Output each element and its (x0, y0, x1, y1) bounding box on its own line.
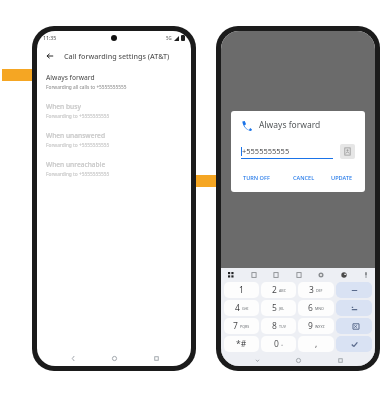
staticText: DEF (316, 288, 323, 293)
staticText: TUV (279, 324, 286, 329)
staticText: JKL (279, 306, 285, 311)
staticText: TURN OFF (243, 174, 270, 182)
button[interactable]: When unreachable (37, 159, 191, 179)
staticText: 6 (308, 302, 313, 314)
staticText: *# (236, 338, 247, 350)
button[interactable]: When busy (221, 101, 375, 121)
staticText: 11:35 (227, 34, 241, 41)
button[interactable]: Recents (334, 355, 346, 366)
staticText: WXYZ (315, 324, 325, 329)
button[interactable]: Dash (336, 282, 372, 298)
staticText: 9 (308, 320, 313, 332)
other: Pointer to Turn off (196, 168, 248, 194)
button[interactable]: Settings (316, 270, 325, 279)
button[interactable]: 8 (261, 318, 296, 334)
button[interactable]: Clipboard (294, 270, 303, 279)
button[interactable]: UPDATE (329, 172, 355, 184)
staticText: Forwarding to +5555555555 (46, 113, 110, 120)
button[interactable]: Theme (339, 270, 348, 279)
button[interactable]: 0 (261, 336, 296, 352)
button[interactable]: , (298, 336, 334, 352)
button[interactable]: 6 (298, 300, 334, 316)
button[interactable]: Done (336, 336, 372, 352)
staticText: Forwarding to +5555555555 (230, 113, 294, 120)
staticText: 8 (272, 320, 277, 332)
button[interactable]: 4 (224, 300, 259, 316)
button[interactable]: Sticker (249, 270, 258, 279)
button[interactable]: 7 (224, 318, 259, 334)
staticText: Forwarding to +5555555555 (46, 171, 110, 178)
staticText: 4 (235, 302, 240, 314)
button[interactable]: When busy (37, 101, 191, 121)
button[interactable]: When unanswered (37, 130, 191, 150)
staticText: MNO (315, 306, 324, 311)
staticText: ABC (279, 288, 286, 293)
staticText: + (281, 342, 284, 347)
staticText: Always forward (46, 73, 95, 82)
button[interactable]: Backspace (336, 318, 372, 334)
button[interactable]: *# (224, 336, 259, 352)
staticText: 7 (233, 320, 238, 332)
button[interactable]: TURN OFF (241, 172, 272, 184)
staticText: Forwarding to +5555555555 (46, 142, 110, 149)
staticText: 11:35 (43, 34, 57, 41)
button[interactable]: Back (44, 50, 56, 62)
button[interactable]: Hide keyboard (251, 355, 263, 366)
staticText: CANCEL (293, 174, 315, 182)
button[interactable]: Home (108, 352, 120, 364)
staticText: 2 (272, 284, 277, 296)
button[interactable]: 3 (298, 282, 334, 298)
button[interactable]: CANCEL (291, 172, 317, 184)
other: Pointer to Always forward (2, 62, 54, 88)
button[interactable]: 9 (298, 318, 334, 334)
staticText: GHI (242, 306, 249, 311)
staticText: When busy (46, 102, 81, 111)
staticText: Call forwarding settings (AT&T) (64, 51, 170, 61)
button[interactable]: 1 (224, 282, 259, 298)
button[interactable]: Home (292, 355, 304, 366)
staticText: 3 (309, 284, 314, 296)
staticText: When unanswered (46, 131, 105, 140)
staticText: , (315, 338, 318, 350)
staticText: Always forward (259, 119, 321, 131)
button[interactable]: Back (37, 44, 191, 68)
button[interactable]: Contacts (340, 144, 355, 159)
button[interactable]: Apps (226, 270, 235, 279)
staticText: +5555555555 (242, 146, 290, 156)
button[interactable]: Always forward (37, 72, 191, 92)
button[interactable]: 2 (261, 282, 296, 298)
button[interactable]: Back (67, 352, 79, 364)
staticText: 5G (166, 35, 172, 41)
button[interactable]: Recents (150, 352, 162, 364)
button[interactable]: Voice input (361, 270, 370, 279)
staticText: 0 (274, 338, 279, 350)
staticText: UPDATE (331, 174, 353, 182)
staticText: 1 (239, 284, 244, 296)
button[interactable]: GIF (271, 270, 280, 279)
button[interactable]: 5 (261, 300, 296, 316)
staticText: PQRS (240, 324, 250, 329)
button[interactable]: Pause (336, 300, 372, 316)
staticText: Forwarding all calls to +5555555555 (46, 84, 127, 91)
staticText: 5 (272, 302, 277, 314)
staticText: When unreachable (46, 160, 106, 169)
